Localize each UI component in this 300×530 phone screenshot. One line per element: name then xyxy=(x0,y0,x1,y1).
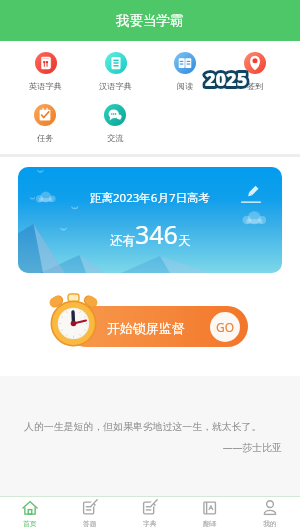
staticText: ——莎士比亚 xyxy=(24,440,282,454)
button[interactable]: 英语字典 xyxy=(23,51,68,92)
staticText: 答题 xyxy=(83,519,97,528)
button[interactable]: 开始锁屏监督 xyxy=(42,296,248,352)
button[interactable]: 汉语字典 xyxy=(93,51,138,92)
staticText: 汉语字典 xyxy=(99,81,132,91)
button[interactable]: 阅读 xyxy=(168,51,202,92)
button[interactable]: 签到 xyxy=(238,51,272,92)
staticText: 天 xyxy=(178,233,191,249)
staticText: 翻译 xyxy=(203,519,217,528)
button[interactable]: 字典 xyxy=(120,497,180,530)
staticText: 人的一生是短的，但如果卑劣地过这一生，就太长了。 xyxy=(24,420,262,432)
button[interactable]: 任务 xyxy=(28,103,62,144)
staticText: 字典 xyxy=(143,519,157,528)
staticText: 距离2023年6月7日高考 xyxy=(90,190,210,206)
button[interactable]: 翻译 xyxy=(180,497,240,530)
button[interactable]: 距离2023年6月7日高考 xyxy=(18,167,282,273)
staticText: 开始锁屏监督 xyxy=(107,320,185,336)
staticText: 交流 xyxy=(107,133,124,143)
staticText: 英语字典 xyxy=(29,81,62,91)
staticText: 阅读 xyxy=(177,81,194,91)
staticText: 346 xyxy=(135,217,178,251)
staticText: 任务 xyxy=(37,133,54,143)
staticText: 还有 xyxy=(110,233,135,249)
button[interactable]: 交流 xyxy=(98,103,132,144)
button[interactable]: 首页 xyxy=(0,497,60,530)
staticText: 首页 xyxy=(23,519,37,528)
button[interactable]: 答题 xyxy=(60,497,120,530)
staticText: 我的 xyxy=(263,519,277,528)
staticText: GO xyxy=(216,319,235,335)
staticText: 2025 xyxy=(205,67,248,92)
button[interactable]: 我的 xyxy=(240,497,300,530)
staticText: 我要当学霸 xyxy=(116,12,184,29)
staticText: 签到 xyxy=(247,81,264,91)
staticText: 2025 xyxy=(205,67,248,92)
